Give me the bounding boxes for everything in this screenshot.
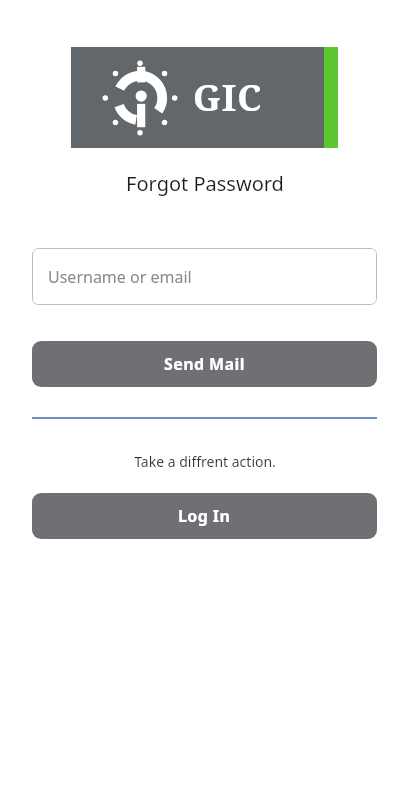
staticText: Log In xyxy=(178,505,231,527)
staticText: Forgot Password xyxy=(126,170,284,197)
button[interactable]: Send Mail xyxy=(32,341,377,387)
staticText: Username or email xyxy=(48,266,192,288)
staticText: GIC xyxy=(193,73,263,122)
button[interactable]: Log In xyxy=(32,493,377,539)
staticText: Send Mail xyxy=(164,353,245,375)
button[interactable]: Username or email xyxy=(32,248,377,305)
staticText: Take a diffrent action. xyxy=(134,452,276,471)
